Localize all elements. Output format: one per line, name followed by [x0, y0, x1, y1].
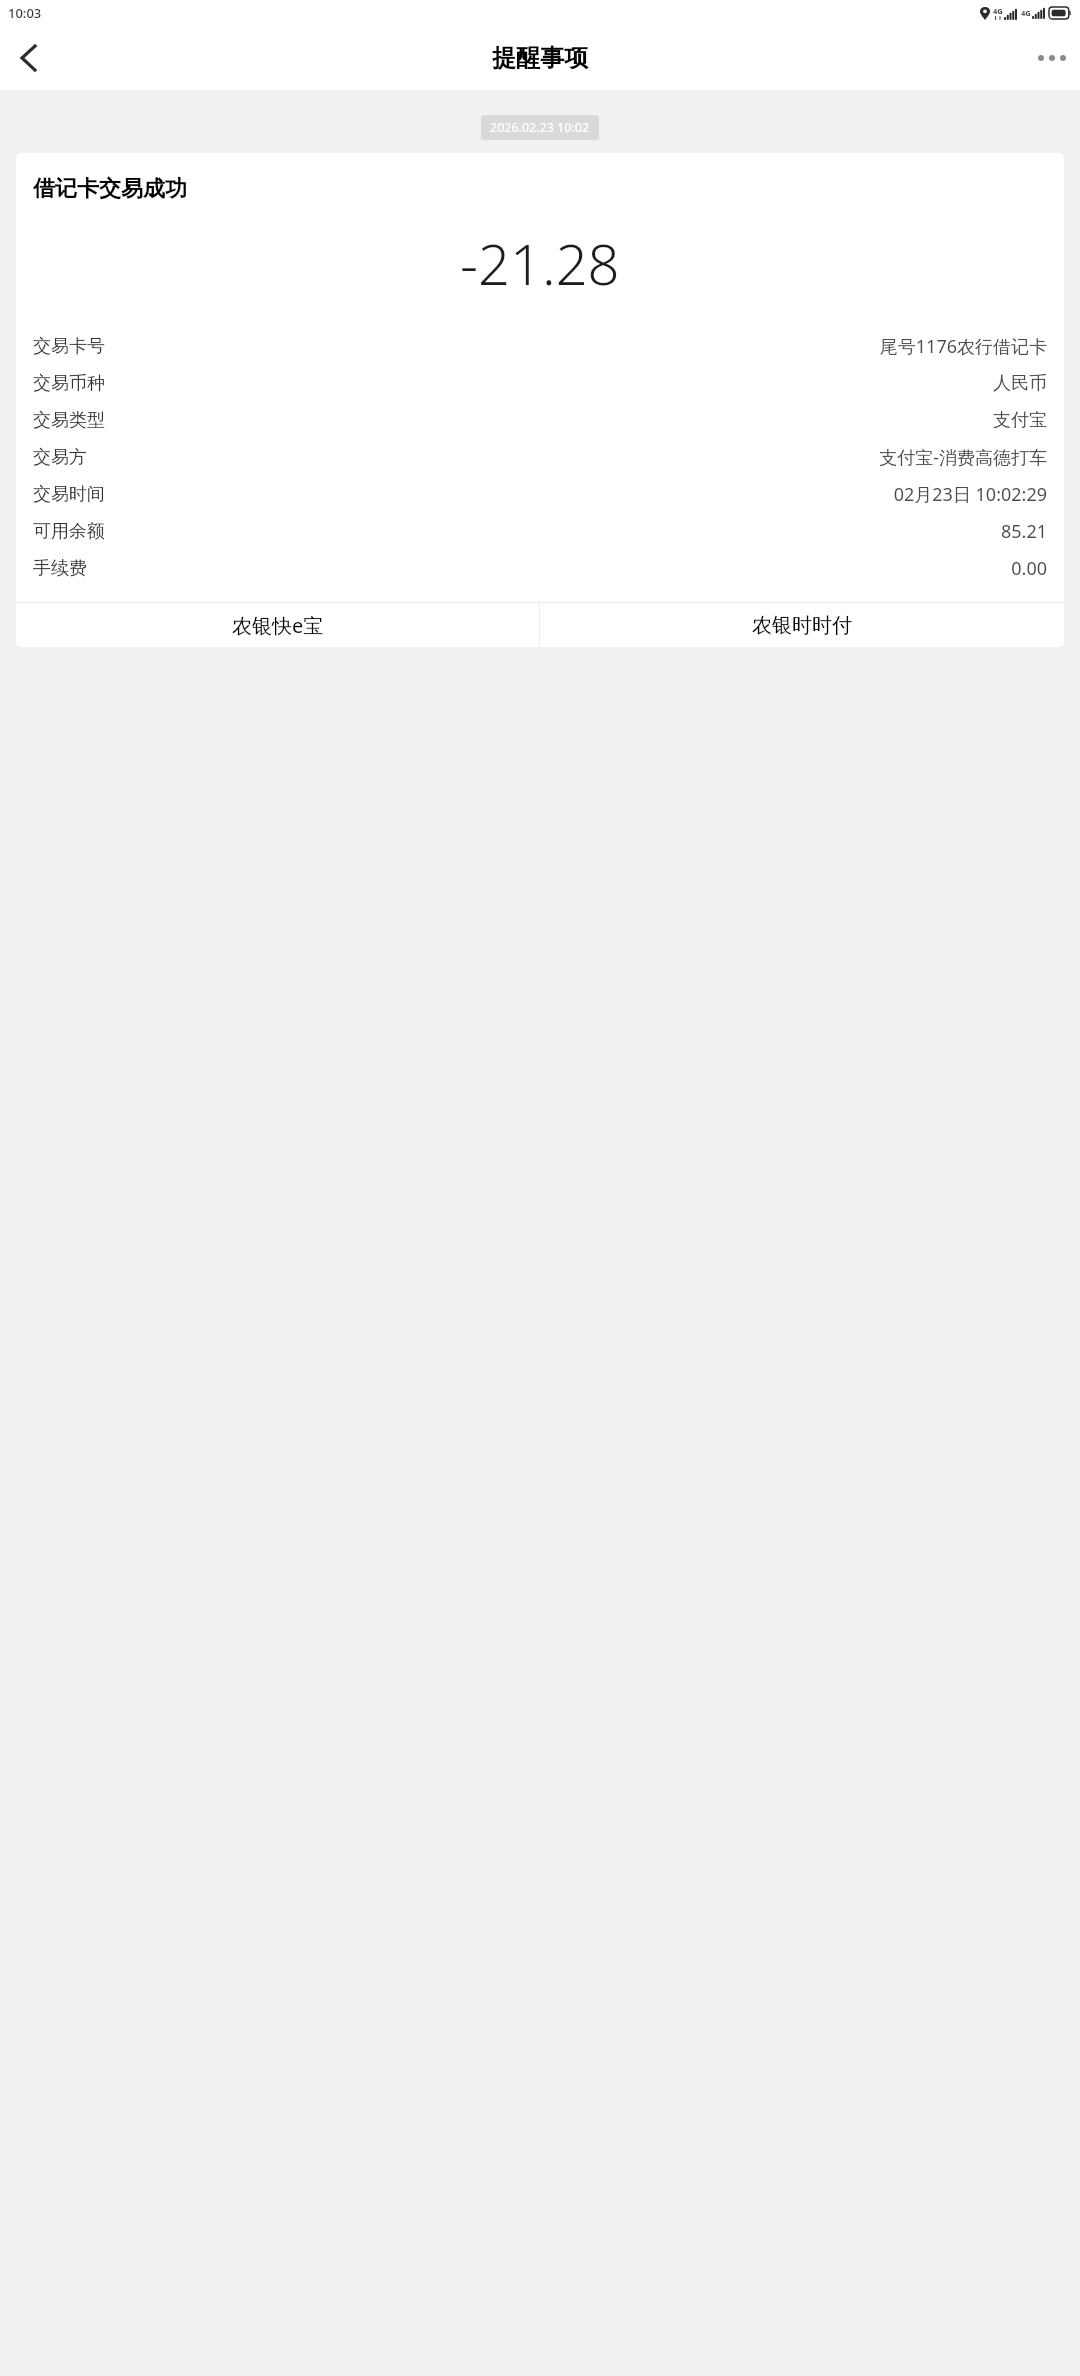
button[interactable]: 农银快e宝	[16, 603, 539, 647]
staticText: 4G	[993, 6, 1003, 16]
button[interactable]: More options	[1024, 30, 1080, 86]
staticText: 农银快e宝	[232, 612, 324, 639]
staticText: 交易币种	[33, 372, 105, 395]
staticText: 4G	[1021, 8, 1031, 18]
staticText: 可用余额	[33, 520, 105, 543]
staticText: 2026.02.23 10:02	[490, 119, 590, 136]
staticText: 02月23日 10:02:29	[893, 482, 1047, 507]
staticText: 交易方	[33, 446, 87, 469]
button[interactable]: Back	[0, 30, 56, 86]
staticText: 农银时时付	[752, 613, 852, 638]
staticText: 尾号1176农行借记卡	[879, 334, 1047, 359]
staticText: -21.28	[460, 225, 620, 301]
staticText: 人民币	[993, 372, 1047, 395]
staticText: 支付宝-消费高德打车	[879, 445, 1047, 470]
staticText: 借记卡交易成功	[33, 175, 187, 203]
staticText: 手续费	[33, 557, 87, 580]
staticText: 85.21	[1000, 519, 1047, 544]
staticText: 0.00	[1011, 556, 1047, 581]
staticText: 支付宝	[993, 409, 1047, 432]
staticText: 交易卡号	[33, 335, 105, 358]
staticText: 10:03	[8, 4, 42, 22]
staticText: 提醒事项	[492, 43, 588, 73]
staticText: 交易时间	[33, 483, 105, 506]
button[interactable]: 农银时时付	[540, 603, 1064, 647]
staticText: 交易类型	[33, 409, 105, 432]
